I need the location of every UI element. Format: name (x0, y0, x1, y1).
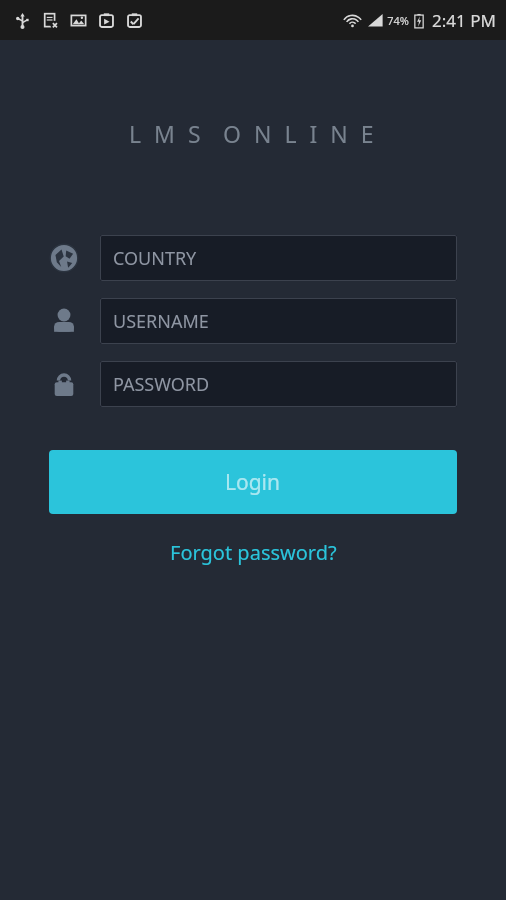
button[interactable]: Forgot password? (160, 535, 347, 570)
button[interactable]: Login (49, 450, 457, 514)
staticText: Login (225, 468, 281, 497)
staticText: PASSWORD (113, 372, 210, 397)
staticText: USERNAME (113, 309, 209, 334)
button[interactable]: PASSWORD (100, 361, 457, 407)
staticText: Forgot password? (170, 539, 337, 566)
button[interactable]: COUNTRY (100, 235, 457, 281)
staticText: COUNTRY (113, 246, 197, 271)
staticText: 2:41 PM (432, 9, 496, 32)
staticText: 74% (387, 13, 409, 28)
button[interactable]: USERNAME (100, 298, 457, 344)
staticText: L M S O N L I N E (0, 118, 506, 149)
